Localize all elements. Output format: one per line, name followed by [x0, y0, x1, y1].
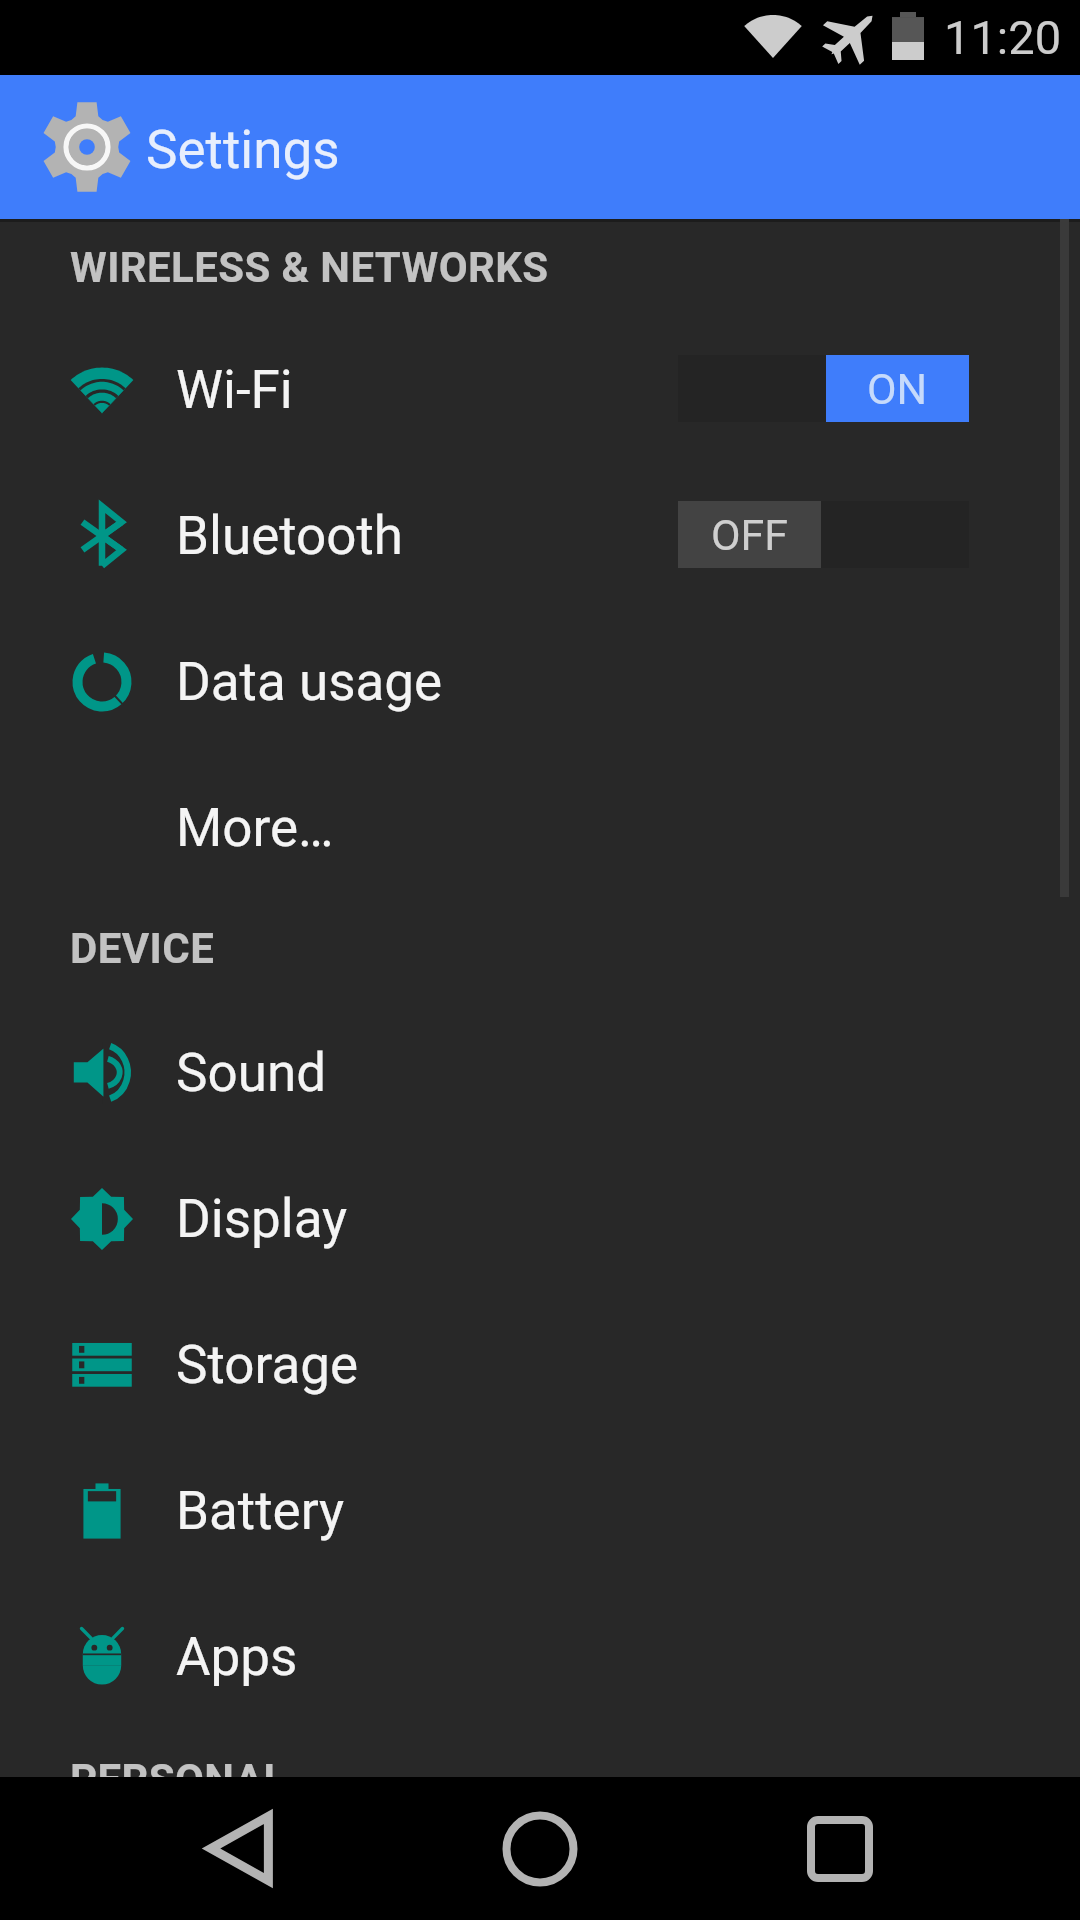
button[interactable]: Display [0, 1146, 1080, 1292]
staticText: WIRELESS & NETWORKS [70, 243, 549, 292]
staticText: Apps [176, 1626, 298, 1688]
button[interactable]: Wi-Fi [0, 317, 1080, 463]
staticText: Wi-Fi [176, 359, 293, 421]
button[interactable]: Apps [0, 1584, 1080, 1730]
button[interactable]: Battery [0, 1438, 1080, 1584]
staticText: 11:20 [944, 10, 1062, 65]
staticText: Display [176, 1188, 348, 1250]
staticText: Sound [176, 1042, 327, 1104]
staticText: Settings [146, 119, 340, 181]
staticText: Storage [176, 1334, 359, 1396]
staticText: DEVICE [70, 924, 215, 973]
button[interactable]: Home [450, 1777, 630, 1920]
button[interactable]: Data usage [0, 609, 1080, 755]
staticText: OFF [711, 510, 789, 560]
button[interactable]: Bluetooth [0, 463, 1080, 609]
staticText: Battery [176, 1480, 345, 1542]
button[interactable]: Sound [0, 1000, 1080, 1146]
button[interactable]: Settings [40, 75, 134, 219]
staticText: Data usage [176, 651, 443, 713]
staticText: PERSONAL [70, 1755, 287, 1804]
button[interactable]: Storage [0, 1292, 1080, 1438]
button[interactable]: Back [150, 1777, 330, 1920]
button[interactable]: OFF [678, 501, 969, 568]
button[interactable]: Recent apps [750, 1777, 930, 1920]
staticText: More… [176, 797, 334, 859]
staticText: Bluetooth [176, 505, 404, 567]
button[interactable]: More… [0, 755, 1080, 901]
button[interactable]: ON [678, 355, 969, 422]
staticText: ON [867, 364, 928, 414]
